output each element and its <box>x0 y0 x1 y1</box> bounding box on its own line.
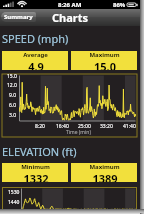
staticText: 1332 <box>23 171 49 182</box>
staticText: Minimum <box>21 163 50 171</box>
staticText: Charts <box>52 10 89 25</box>
staticText: 15.0 <box>94 59 116 70</box>
button[interactable]: Summary <box>1 12 36 22</box>
staticText: 6.0 <box>9 102 17 109</box>
staticText: SPEED (mph) <box>2 31 69 46</box>
staticText: 8:26 AM <box>58 1 82 9</box>
button[interactable]: Minimum <box>2 163 68 182</box>
staticText: 1440 <box>8 199 20 206</box>
staticText: 33:20 <box>100 123 113 130</box>
staticText: Maximum <box>89 163 120 171</box>
staticText: 3.0 <box>9 112 17 119</box>
staticText: 16:40 <box>56 123 69 130</box>
staticText: Time (min) <box>66 129 91 136</box>
staticText: 25:00 <box>78 123 91 130</box>
staticText: 1530 <box>8 189 20 196</box>
staticText: 41:40 <box>123 123 136 130</box>
staticText: Maximum <box>89 51 120 59</box>
staticText: Summary <box>4 13 33 21</box>
button[interactable]: Maximum <box>71 163 137 182</box>
staticText: 8:20 <box>35 123 45 130</box>
staticText: ELEVATION (ft) <box>2 144 77 159</box>
staticText: Average <box>23 51 48 59</box>
button[interactable]: Maximum <box>71 51 137 70</box>
staticText: 1389 <box>92 171 118 182</box>
staticText: 86% <box>113 1 126 9</box>
button[interactable]: Average <box>2 51 68 70</box>
staticText: 4.9 <box>28 59 44 70</box>
staticText: 9.0 <box>9 92 17 99</box>
staticText: 12.0 <box>7 82 17 89</box>
staticText: 15.0 <box>7 73 17 80</box>
